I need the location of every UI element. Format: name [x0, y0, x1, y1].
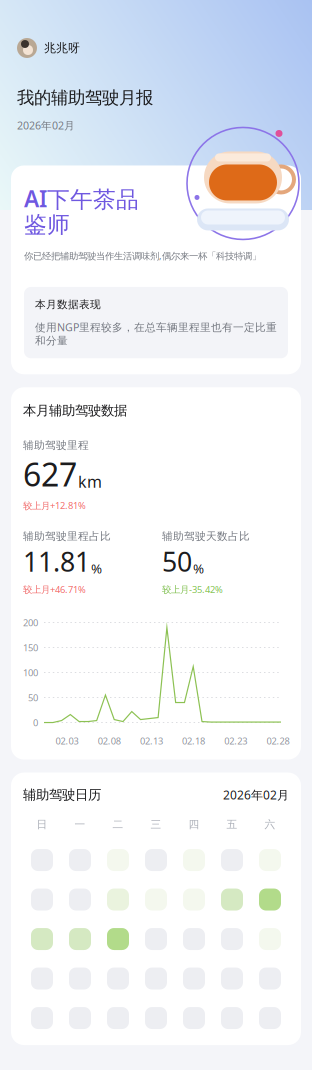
staticText: 627: [23, 453, 77, 495]
staticText: 本月辅助驾驶数据: [23, 402, 127, 419]
staticText: 四: [188, 818, 199, 831]
staticText: 11.81: [23, 544, 90, 579]
staticText: 02.28: [266, 735, 289, 747]
staticText: 辅助驾驶天数占比: [162, 530, 250, 543]
staticText: 0: [33, 716, 38, 729]
staticText: %: [193, 559, 204, 577]
staticText: 五: [226, 818, 237, 831]
staticText: 2026年02月: [223, 787, 289, 803]
staticText: 2026年02月: [17, 118, 75, 132]
staticText: 二: [112, 818, 123, 831]
staticText: 你已经把辅助驾驶当作生活调味剂,偶尔来一杯「科技特调」: [24, 249, 261, 262]
staticText: 100: [23, 666, 38, 679]
staticText: 辅助驾驶里程占比: [23, 530, 111, 543]
staticText: 我的辅助驾驶月报: [17, 87, 153, 108]
staticText: km: [78, 471, 102, 492]
staticText: %: [91, 559, 102, 577]
staticText: 兆兆呀: [44, 41, 80, 55]
staticText: 使用NGP里程较多，在总车辆里程里也有一定比重和分量: [35, 320, 277, 347]
staticText: 较上月-35.42%: [162, 583, 223, 596]
staticText: 日: [36, 818, 47, 831]
staticText: 较上月+12.81%: [23, 499, 86, 512]
staticText: 辅助驾驶日历: [23, 787, 101, 803]
staticText: 本月数据表现: [35, 298, 101, 311]
staticText: 02.03: [56, 735, 79, 747]
staticText: 较上月+46.71%: [23, 583, 86, 596]
staticText: 50: [162, 544, 192, 579]
staticText: AI下午茶品: [24, 183, 139, 214]
staticText: 02.23: [224, 735, 247, 747]
staticText: 200: [23, 616, 38, 629]
staticText: 辅助驾驶里程: [23, 439, 89, 452]
staticText: 50: [28, 691, 38, 704]
staticText: 02.18: [182, 735, 205, 747]
staticText: 02.13: [140, 735, 163, 747]
staticText: 一: [74, 818, 85, 831]
staticText: 三: [150, 818, 161, 831]
staticText: 六: [264, 818, 275, 831]
staticText: 鉴师: [24, 211, 70, 238]
staticText: 02.08: [98, 735, 121, 747]
staticText: 150: [23, 641, 38, 654]
